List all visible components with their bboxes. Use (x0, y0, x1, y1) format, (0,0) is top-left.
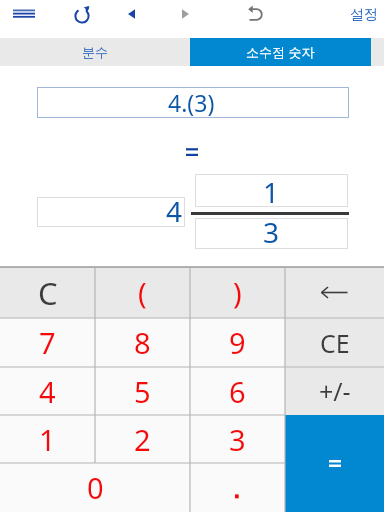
button[interactable]: 9 (190, 318, 285, 367)
button[interactable] (240, 0, 268, 30)
button[interactable]: 7 (0, 318, 95, 367)
button[interactable]: 6 (190, 367, 285, 415)
button[interactable]: 4.(3) (37, 87, 349, 118)
staticText: 6 (229, 372, 246, 411)
staticText: 0 (87, 468, 104, 507)
button[interactable] (8, 3, 44, 29)
button[interactable] (285, 267, 384, 318)
button[interactable]: ) (190, 267, 285, 318)
staticText: 3 (263, 213, 280, 251)
staticText: 9 (229, 323, 246, 362)
staticText: 분수 (82, 44, 108, 60)
button[interactable]: 설정 (344, 5, 384, 25)
button[interactable]: 소수점 숫자 (190, 38, 371, 66)
button[interactable]: +/- (285, 367, 384, 415)
staticText: +/- (319, 374, 351, 408)
staticText: 설정 (350, 6, 378, 24)
button[interactable]: 4 (0, 367, 95, 415)
staticText: 2 (134, 420, 151, 459)
staticText: 1 (39, 420, 56, 459)
button[interactable]: 8 (95, 318, 190, 367)
staticText: 4 (166, 192, 183, 230)
button[interactable] (171, 1, 199, 29)
staticText: 1 (263, 173, 280, 211)
button[interactable]: 3 (190, 415, 285, 463)
staticText: 8 (134, 323, 151, 362)
staticText: ) (233, 273, 242, 312)
staticText: ( (138, 273, 147, 312)
staticText: 4.(3) (168, 87, 215, 118)
button[interactable]: 분수 (0, 38, 190, 66)
button[interactable]: C (0, 267, 95, 318)
staticText: CE (320, 326, 350, 360)
staticText: 4 (39, 372, 56, 411)
button[interactable]: 1 (0, 415, 95, 463)
button[interactable]: 5 (95, 367, 190, 415)
button[interactable]: CE (285, 318, 384, 367)
button[interactable] (190, 463, 285, 512)
button[interactable]: ( (95, 267, 190, 318)
button[interactable] (118, 1, 146, 29)
button[interactable] (66, 1, 96, 31)
staticText: 3 (229, 420, 246, 459)
button[interactable]: 2 (95, 415, 190, 463)
staticText: C (38, 272, 58, 314)
staticText: 소수점 숫자 (246, 43, 315, 61)
staticText: 5 (134, 372, 151, 411)
staticText: 7 (39, 323, 56, 362)
button[interactable]: 0 (0, 463, 190, 512)
button[interactable] (285, 415, 384, 512)
